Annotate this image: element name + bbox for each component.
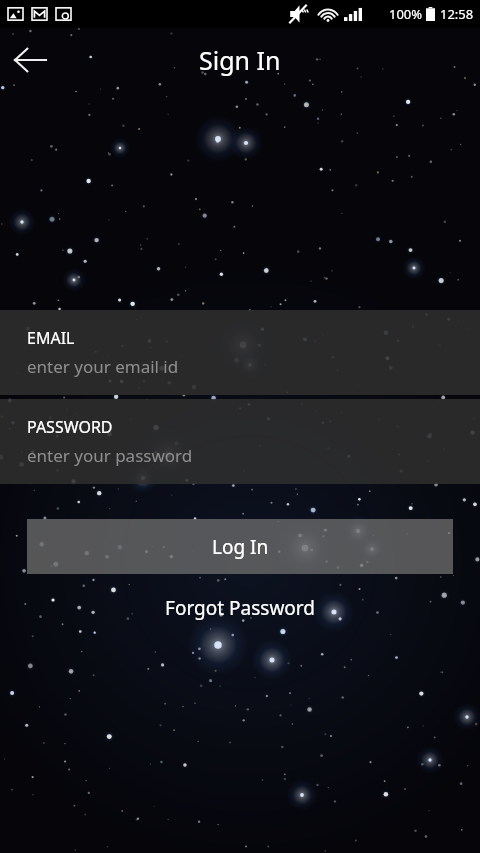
staticText: 12:58 xyxy=(440,5,474,23)
staticText: enter your email id xyxy=(27,355,179,378)
button[interactable]: PASSWORD xyxy=(0,399,480,484)
staticText: 100% xyxy=(389,5,423,23)
staticText: enter your password xyxy=(27,444,193,467)
staticText: EMAIL xyxy=(27,327,75,349)
staticText: Log In xyxy=(212,534,269,560)
button[interactable]: Log In xyxy=(27,519,453,574)
staticText: Sign In xyxy=(199,43,281,77)
staticText: Forgot Password xyxy=(165,595,315,621)
button[interactable]: EMAIL xyxy=(0,310,480,395)
staticText: PASSWORD xyxy=(27,416,113,438)
button[interactable]: Back xyxy=(6,36,54,84)
button[interactable]: Forgot Password xyxy=(165,595,315,621)
